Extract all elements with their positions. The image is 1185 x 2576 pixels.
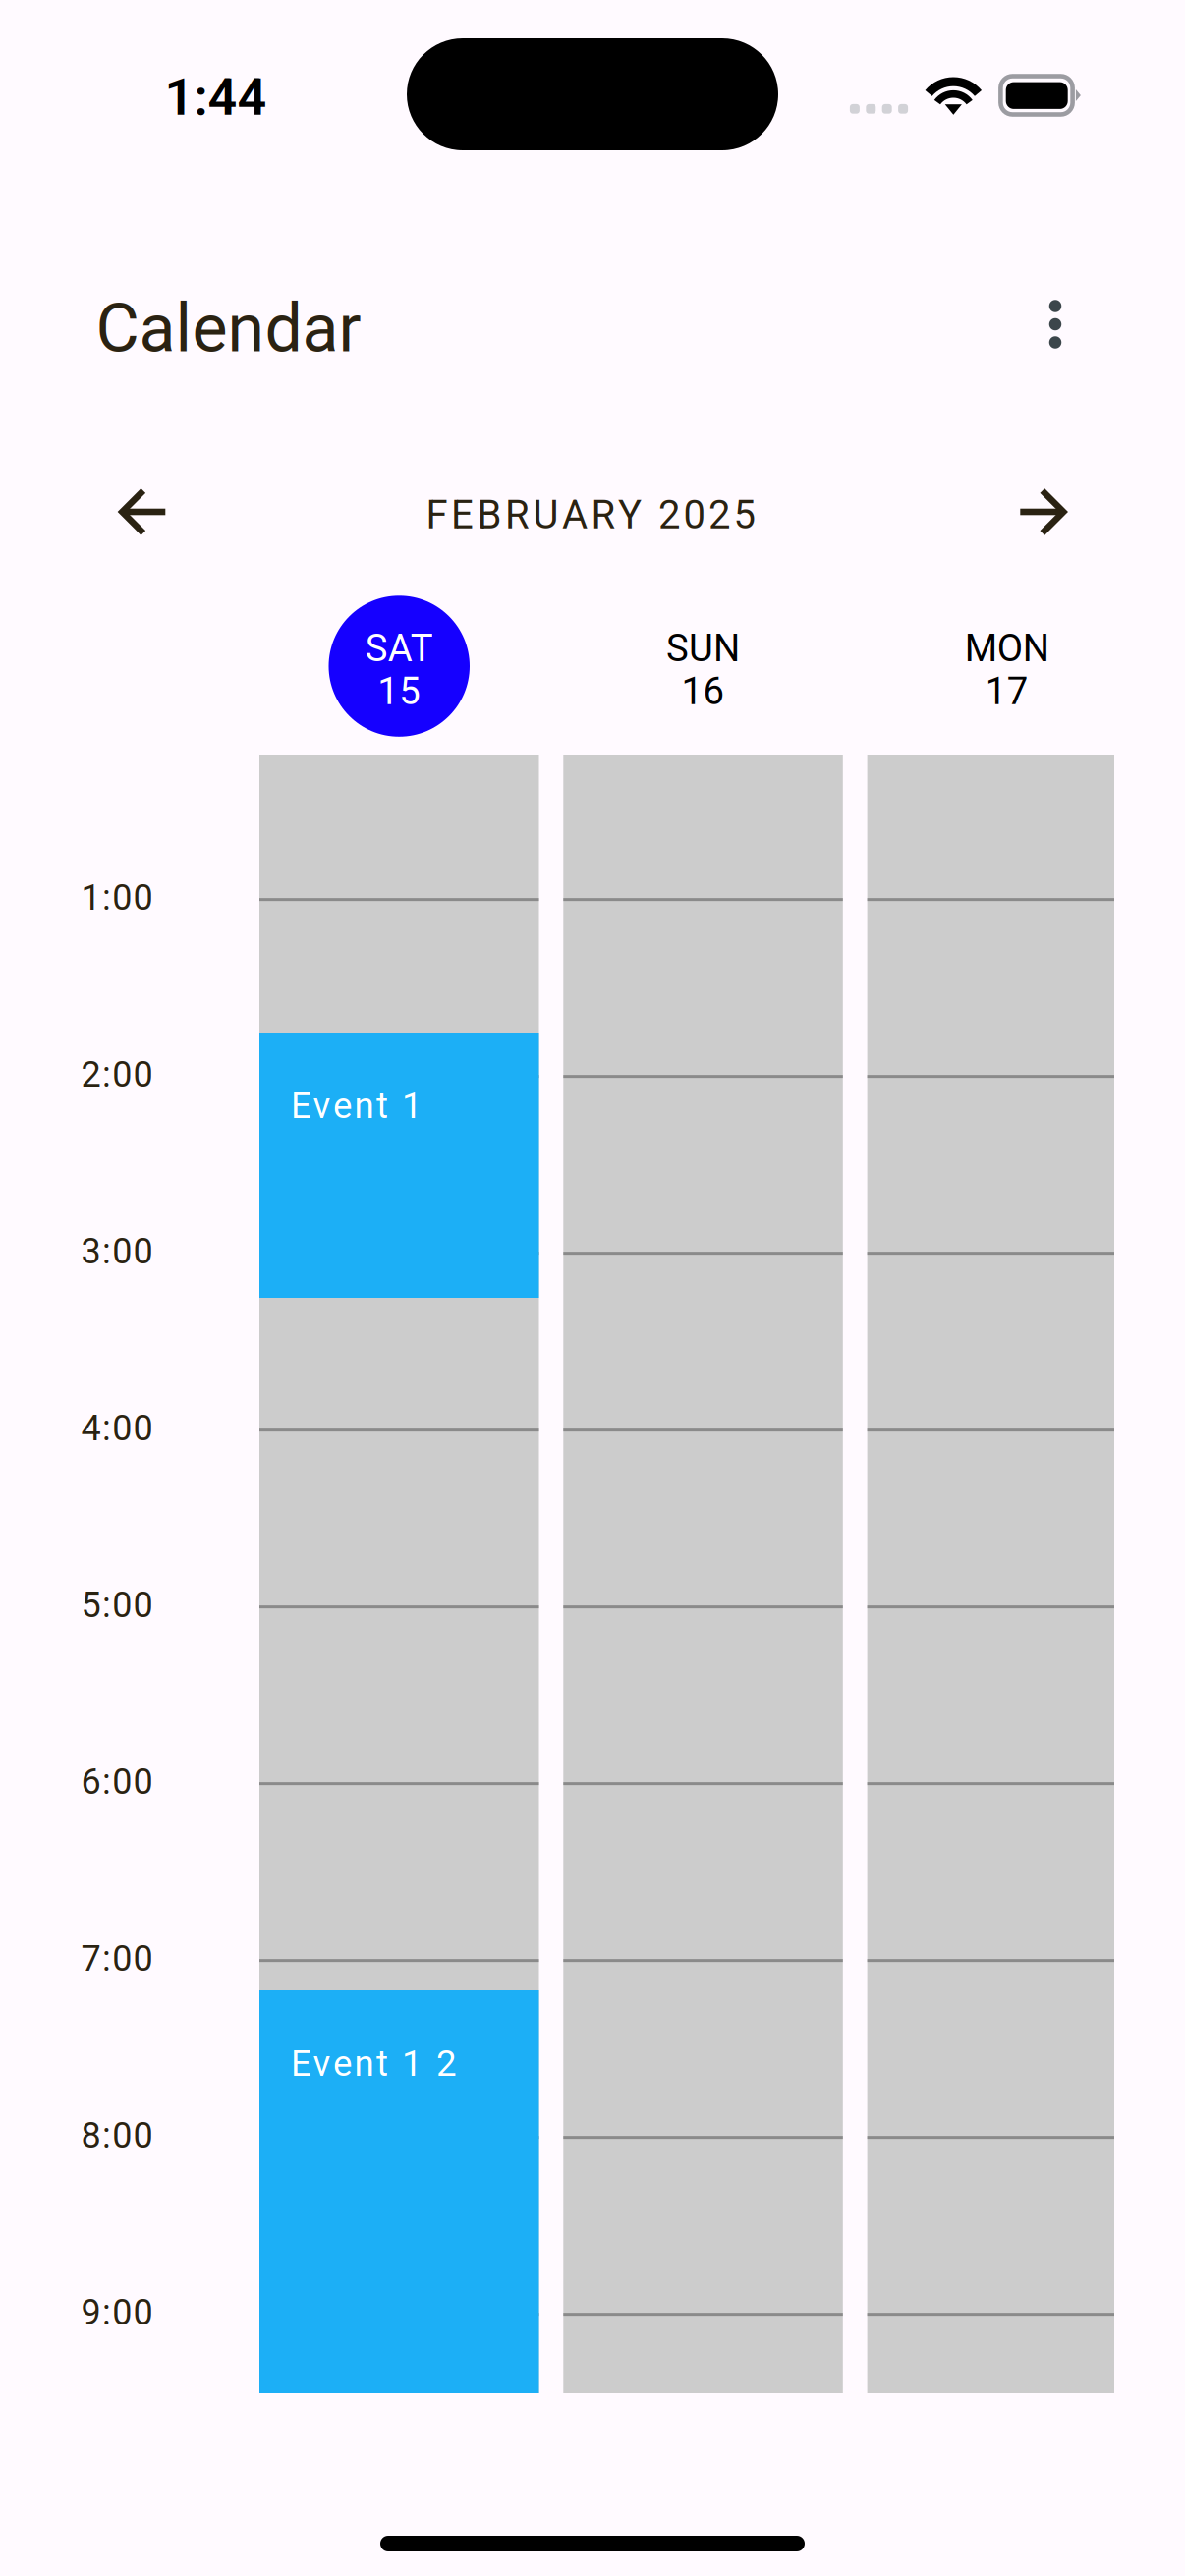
staticText: SUN [666,626,740,670]
staticText: 7:00 [81,1938,153,1979]
button[interactable]: MON [919,595,1095,741]
staticText: 16 [681,669,725,713]
staticText: 9:00 [81,2292,153,2333]
staticText: 15 [378,669,421,713]
staticText: Event 1 [291,1085,423,1127]
button[interactable]: More options [1010,279,1100,369]
button[interactable]: SAT [311,595,488,741]
button[interactable]: SAT 15 schedule [259,755,539,2393]
staticText: 4:00 [81,1407,153,1449]
staticText: 2:00 [81,1054,153,1095]
staticText: MON [965,626,1049,670]
staticText: Calendar [96,289,361,368]
button[interactable]: Event 1 2 [259,1990,539,2393]
button[interactable]: Previous month [97,465,191,559]
button[interactable]: Next month [995,465,1089,559]
staticText: 1:00 [81,877,153,918]
staticText: FEBRUARY 2025 [426,492,755,538]
staticText: 8:00 [81,2115,153,2156]
staticText: 3:00 [81,1231,153,1272]
staticText: 6:00 [81,1761,153,1803]
staticText: SAT [365,626,433,670]
staticText: Event 1 2 [291,2043,457,2085]
staticText: 1:44 [165,67,267,127]
button[interactable]: MON 17 schedule [867,755,1114,2393]
button[interactable]: SUN [615,595,791,741]
button[interactable]: SUN 16 schedule [563,755,843,2393]
staticText: 17 [985,669,1029,713]
button[interactable]: Event 1 [259,1033,539,1298]
staticText: 5:00 [81,1584,153,1626]
